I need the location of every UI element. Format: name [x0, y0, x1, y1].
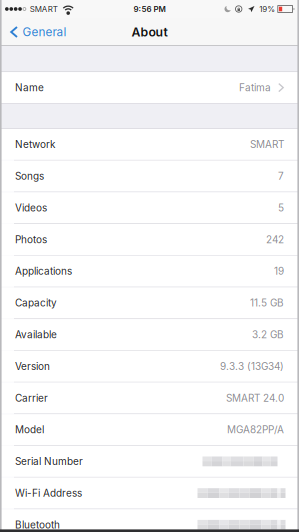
staticText: 242: [266, 233, 284, 246]
staticText: Bluetooth: [15, 519, 60, 531]
staticText: Fatima: [239, 82, 271, 94]
staticText: 9:56 PM: [133, 4, 165, 14]
button[interactable]: Carrier: [0, 382, 299, 413]
staticText: Capacity: [15, 297, 57, 309]
button[interactable]: Songs: [0, 161, 299, 192]
staticText: SMART: [250, 138, 284, 150]
staticText: Songs: [15, 170, 44, 182]
staticText: Available: [15, 329, 57, 341]
staticText: Network: [15, 138, 55, 150]
button[interactable]: Version: [0, 351, 299, 382]
staticText: Carrier: [15, 392, 48, 404]
staticText: General: [22, 25, 66, 39]
staticText: 11.5 GB: [250, 297, 284, 309]
button[interactable]: Name: [0, 72, 299, 103]
staticText: Serial Number: [15, 455, 83, 467]
button[interactable]: Wi-Fi Address: [0, 478, 299, 509]
staticText: SMART: [30, 4, 58, 14]
staticText: Videos: [15, 202, 47, 214]
staticText: About: [131, 25, 167, 39]
staticText: Applications: [15, 265, 72, 277]
staticText: 19%: [259, 4, 275, 14]
button[interactable]: General: [0, 18, 74, 46]
staticText: Name: [15, 82, 44, 94]
staticText: Model: [15, 424, 44, 436]
button[interactable]: Serial Number: [0, 446, 299, 477]
staticText: 7: [278, 170, 284, 182]
staticText: 9.3.3 (13G34): [220, 360, 284, 372]
staticText: Photos: [15, 233, 47, 246]
button[interactable]: Model: [0, 414, 299, 445]
button[interactable]: Capacity: [0, 287, 299, 318]
staticText: MGA82PP/A: [227, 424, 284, 436]
button[interactable]: Available: [0, 319, 299, 350]
staticText: 5: [278, 202, 284, 214]
staticText: 3.2 GB: [252, 329, 284, 341]
button[interactable]: Applications: [0, 256, 299, 287]
staticText: Version: [15, 360, 50, 372]
button[interactable]: Bluetooth: [0, 509, 299, 532]
button[interactable]: Network: [0, 129, 299, 160]
staticText: 19: [274, 265, 284, 277]
button[interactable]: Photos: [0, 224, 299, 255]
staticText: Wi-Fi Address: [15, 487, 82, 499]
staticText: SMART 24.0: [226, 392, 284, 404]
button[interactable]: Videos: [0, 192, 299, 223]
